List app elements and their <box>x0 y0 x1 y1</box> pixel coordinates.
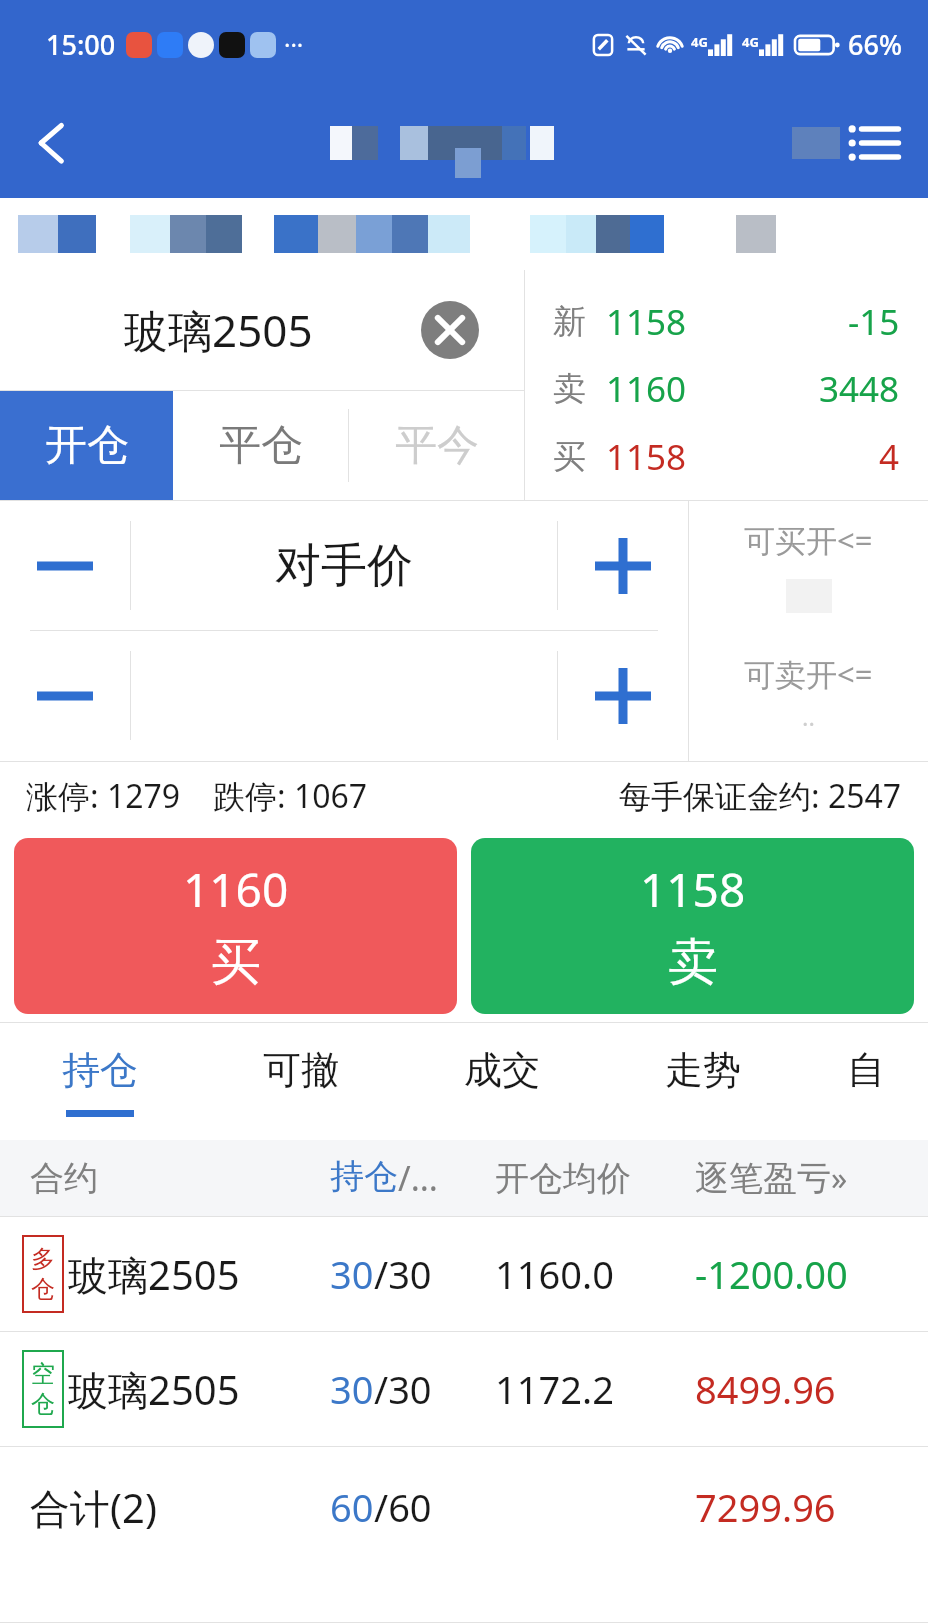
button[interactable]: 持仓 <box>330 1155 495 1201</box>
staticText: /60 <box>374 1481 432 1533</box>
staticText: 1160.0 <box>495 1248 695 1300</box>
staticText: 合约 <box>30 1157 330 1200</box>
staticText: 30 <box>330 1363 374 1415</box>
staticText: /30 <box>374 1248 432 1300</box>
staticText: 可卖开<= <box>744 653 873 695</box>
staticText: 仓 <box>31 1389 55 1419</box>
staticText: 买 <box>553 436 586 478</box>
staticText: 空 <box>31 1359 55 1389</box>
staticText: 1158 <box>606 433 687 481</box>
staticText: 多 <box>31 1244 55 1274</box>
staticText: 1160 <box>183 858 289 921</box>
staticText: 1158 <box>640 858 746 921</box>
staticText: 卖 <box>668 931 718 994</box>
staticText: 8499.96 <box>695 1363 836 1415</box>
staticText: -15 <box>848 298 900 346</box>
button[interactable]: 平仓 <box>173 391 348 500</box>
button[interactable]: 自 <box>803 1022 928 1140</box>
button[interactable]: Increase <box>558 631 688 760</box>
button[interactable]: 平今 <box>349 391 524 500</box>
staticText: 4G <box>742 33 759 51</box>
staticText: 自 <box>847 1046 885 1094</box>
staticText: 可撤 <box>263 1046 339 1094</box>
staticText: 4 <box>879 433 900 481</box>
button[interactable]: 对手价 <box>131 501 557 630</box>
staticText: 合计(2) <box>30 1480 330 1535</box>
staticText: 平仓 <box>219 419 303 472</box>
button[interactable]: 1160 <box>14 838 457 1014</box>
button[interactable]: 开仓 <box>0 391 173 500</box>
staticText: 逐笔盈亏 <box>695 1157 831 1200</box>
button[interactable]: Back <box>18 108 88 178</box>
staticText: -1200.00 <box>695 1248 848 1300</box>
button[interactable]: 合计(2) <box>0 1447 928 1567</box>
button[interactable]: 持仓 <box>0 1022 200 1140</box>
staticText: 玻璃2505 <box>68 1362 240 1417</box>
staticText: 66% <box>848 26 902 63</box>
staticText: 3448 <box>819 365 900 413</box>
staticText: ··· <box>284 28 304 61</box>
staticText: 玻璃2505 <box>68 1247 240 1302</box>
button[interactable]: 1158 <box>471 838 914 1014</box>
staticText: 仓 <box>31 1274 55 1304</box>
button[interactable]: 多 <box>0 1217 928 1331</box>
staticText: 每手保证金约: 2547 <box>619 774 902 818</box>
staticText: 玻璃2505 <box>124 300 313 360</box>
button[interactable]: Decrease <box>0 501 130 630</box>
button[interactable]: Menu <box>838 107 910 179</box>
staticText: 卖 <box>553 368 586 410</box>
staticText: 平今 <box>395 419 479 472</box>
staticText: 开仓 <box>45 419 129 472</box>
staticText: 30 <box>330 1248 374 1300</box>
staticText: ·· <box>802 707 815 740</box>
button[interactable]: 空 <box>0 1332 928 1446</box>
staticText: 4G <box>691 33 708 51</box>
staticText: /... <box>398 1155 438 1201</box>
staticText: 涨停: 1279 <box>26 774 181 818</box>
button[interactable]: 成交 <box>401 1022 602 1140</box>
staticText: 1172.2 <box>495 1363 695 1415</box>
staticText: 1158 <box>606 298 687 346</box>
staticText: 对手价 <box>275 537 413 595</box>
button[interactable]: Decrease <box>0 631 130 760</box>
button[interactable]: 可撤 <box>200 1022 401 1140</box>
button[interactable]: 走势 <box>602 1022 803 1140</box>
staticText: 可买开<= <box>744 519 873 561</box>
button[interactable]: Clear contract <box>418 298 482 362</box>
staticText: 买 <box>211 931 261 994</box>
staticText: 走势 <box>665 1046 741 1094</box>
staticText: 新 <box>553 301 586 343</box>
staticText: 7299.96 <box>695 1481 836 1533</box>
button[interactable]: Increase <box>558 501 688 630</box>
staticText: 60 <box>330 1481 374 1533</box>
staticText: 15:00 <box>46 26 116 63</box>
staticText: 跌停: 1067 <box>213 774 368 818</box>
staticText: 持仓 <box>62 1046 138 1094</box>
staticText: 持仓 <box>330 1155 398 1198</box>
staticText: » <box>831 1156 848 1200</box>
staticText: 1160 <box>606 365 687 413</box>
staticText: /30 <box>374 1363 432 1415</box>
staticText: 开仓均价 <box>495 1157 695 1200</box>
staticText: 成交 <box>464 1046 540 1094</box>
